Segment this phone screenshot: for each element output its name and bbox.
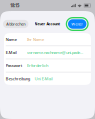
button[interactable]: Weiter [66, 18, 88, 30]
staticText: Passwort [6, 63, 22, 68]
staticText: Weiter [71, 21, 83, 27]
staticText: Name [6, 37, 17, 42]
staticText: E-Mail [6, 50, 17, 55]
staticText: Beschreibung [6, 76, 30, 81]
staticText: Erforderlich [27, 63, 48, 68]
staticText: Neuer Account [34, 22, 60, 26]
button[interactable]: Abbrechen [3, 20, 28, 28]
staticText: Abbrechen [6, 21, 25, 27]
staticText: vorname.nachname@uni-paderborn.de [27, 50, 84, 55]
staticText: Ihr Name [27, 37, 44, 42]
staticText: Uni E-Mail [35, 76, 53, 81]
staticText: 18:15 [10, 3, 19, 8]
